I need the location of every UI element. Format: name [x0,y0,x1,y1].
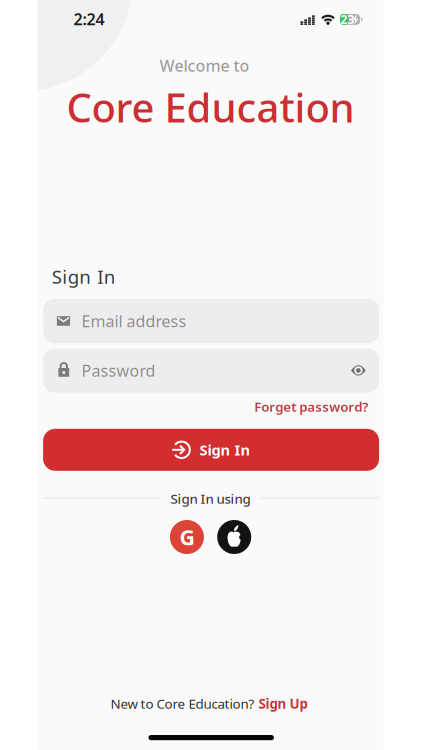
button[interactable]: Email address [43,299,379,343]
staticText: Password [82,360,156,381]
button[interactable]: Forget password? [254,398,368,415]
staticText: New to Core Education? [110,695,254,712]
staticText: Sign In using [171,490,251,507]
button[interactable]: Sign In [43,429,379,471]
staticText: Sign In [200,440,251,460]
staticText: Email address [82,310,187,332]
button[interactable]: Password [43,348,379,392]
staticText: Core Education [67,80,355,133]
staticText: Sign In [52,264,116,289]
staticText: Forget password? [254,398,368,415]
button[interactable]: Sign Up [258,695,307,712]
staticText: 23 [341,11,355,27]
staticText: Welcome to [160,55,250,76]
staticText: G [179,523,194,551]
button[interactable]: Sign in with Google [170,520,204,554]
staticText: 2:24 [73,8,104,30]
button[interactable]: Sign in with Apple [217,520,251,554]
staticText: Sign Up [258,695,307,712]
